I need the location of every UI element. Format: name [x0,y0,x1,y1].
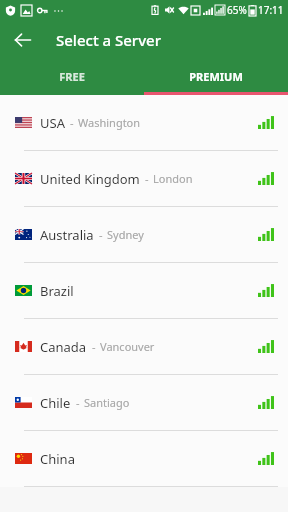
staticText: - [92,339,96,354]
staticText: United Kingdom [40,170,140,188]
staticText: PREMIUM [189,69,243,84]
button[interactable]: USA [0,95,288,151]
button[interactable]: United Kingdom [0,151,288,207]
staticText: Australia [40,226,94,244]
button[interactable]: Brazil [0,263,288,319]
staticText: - [70,115,74,130]
staticText: - [145,171,149,186]
button[interactable]: Canada [0,319,288,375]
button[interactable]: FREE [0,60,144,92]
staticText: Washington [78,115,141,130]
staticText: - [99,227,103,242]
button[interactable]: Back [8,25,38,55]
staticText: Chile [40,394,71,412]
staticText: Brazil [40,282,74,300]
staticText: - [76,395,80,410]
button[interactable]: Australia [0,207,288,263]
staticText: Select a Server [56,30,162,50]
staticText: China [40,450,75,468]
staticText: Canada [40,338,87,356]
staticText: Vancouver [100,339,155,354]
staticText: London [153,171,193,186]
button[interactable]: China [0,431,288,487]
staticText: FREE [59,69,85,84]
staticText: 65% [227,3,247,17]
staticText: Sydney [107,227,144,242]
button[interactable]: Chile [0,375,288,431]
staticText: 17:11 [258,3,284,17]
staticText: USA [40,114,65,132]
staticText: Santiago [84,395,130,410]
button[interactable]: PREMIUM [144,60,288,92]
